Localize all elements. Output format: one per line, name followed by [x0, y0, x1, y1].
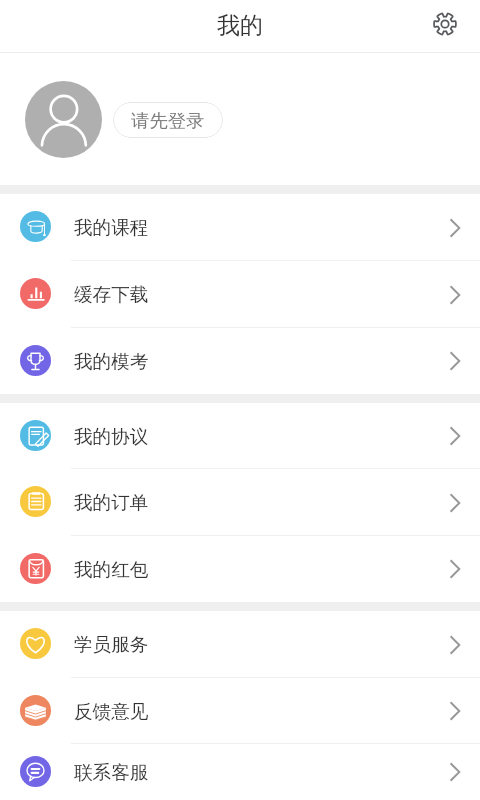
- staticText: 我的红包: [74, 558, 149, 581]
- button[interactable]: 我的课程: [0, 194, 480, 261]
- button[interactable]: 反馈意见: [0, 678, 480, 744]
- button[interactable]: 我的协议: [0, 403, 480, 469]
- staticText: 缓存下载: [74, 283, 149, 306]
- staticText: 联系客服: [74, 761, 149, 784]
- button[interactable]: Settings: [424, 5, 468, 49]
- button[interactable]: 我的红包: [0, 536, 480, 602]
- button[interactable]: Avatar: [25, 81, 102, 158]
- staticText: 我的协议: [74, 425, 149, 448]
- staticText: 反馈意见: [74, 700, 149, 723]
- staticText: 请先登录: [131, 109, 205, 132]
- button[interactable]: 联系客服: [0, 744, 480, 800]
- button[interactable]: 缓存下载: [0, 261, 480, 328]
- staticText: 我的订单: [74, 491, 149, 514]
- button[interactable]: 我的订单: [0, 469, 480, 536]
- button[interactable]: 学员服务: [0, 611, 480, 678]
- staticText: 我的: [217, 11, 263, 40]
- button[interactable]: 请先登录: [113, 102, 223, 138]
- button[interactable]: 我的模考: [0, 328, 480, 394]
- staticText: 我的模考: [74, 350, 149, 373]
- staticText: 我的课程: [74, 216, 149, 239]
- staticText: 学员服务: [74, 633, 149, 656]
